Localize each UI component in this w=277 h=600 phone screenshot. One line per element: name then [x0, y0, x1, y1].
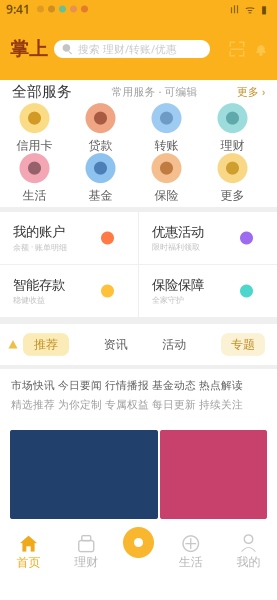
button[interactable]: 活动 — [162, 337, 186, 352]
button[interactable]: 基金 — [67, 153, 133, 203]
staticText: 理财 — [220, 138, 244, 153]
staticText: 搜索 理财/转账/优惠 — [78, 42, 177, 56]
button[interactable]: 贷款 — [67, 103, 133, 153]
staticText: 信用卡 — [16, 138, 52, 153]
staticText: 首页 — [16, 555, 40, 570]
staticText: 智能存款 — [13, 277, 65, 293]
button[interactable]: 更多 — [199, 153, 265, 203]
staticText: 掌上 — [10, 37, 48, 60]
button[interactable]: 信用卡 — [1, 103, 67, 153]
staticText: 全部服务 — [12, 82, 72, 100]
staticText: 稳健收益 — [13, 295, 45, 305]
staticText: 我的 — [236, 555, 260, 569]
staticText: 保险保障 — [152, 277, 204, 293]
button[interactable]: 优惠活动 — [139, 212, 277, 264]
button[interactable]: 智能存款 — [0, 265, 138, 317]
button[interactable]: 扫一扫 — [225, 39, 249, 59]
button[interactable]: 消息 — [249, 39, 273, 59]
button[interactable]: 理财 — [59, 534, 114, 570]
staticText: 生活 — [22, 188, 46, 203]
button[interactable]: 理财 — [199, 103, 265, 153]
staticText: 专题 — [231, 337, 255, 352]
staticText: 推荐 — [34, 337, 58, 352]
staticText: 更多 › — [237, 84, 265, 99]
button[interactable]: 生活 — [1, 153, 67, 203]
staticText: 生活 — [179, 555, 203, 569]
staticText: 常用服务 · 可编辑 — [111, 84, 197, 99]
staticText: 余额 · 账单明细 — [13, 242, 67, 252]
staticText: ıll ᯤ ▮ — [230, 2, 267, 16]
staticText: 限时福利领取 — [152, 242, 200, 252]
staticText: 更多 — [220, 188, 244, 203]
button[interactable]: 保险 — [133, 153, 199, 203]
staticText: 9:41 — [6, 1, 30, 17]
staticText: 我的账户 — [13, 223, 65, 240]
button[interactable]: 推荐 — [23, 333, 69, 356]
staticText: 转账 — [154, 138, 178, 153]
button[interactable]: 我的账户 — [0, 212, 138, 264]
staticText: 优惠活动 — [152, 224, 204, 240]
staticText: 基金 — [88, 188, 112, 203]
button[interactable]: 转账 — [133, 103, 199, 153]
button[interactable]: 首页 — [1, 534, 56, 570]
button[interactable]: 我的 — [221, 534, 276, 570]
staticText: 贷款 — [88, 138, 112, 153]
button[interactable]: 专题 — [221, 333, 265, 356]
button[interactable]: 更多 › — [237, 84, 265, 99]
staticText: 活动 — [162, 337, 186, 352]
staticText: 理财 — [74, 555, 98, 569]
staticText: 精选推荐 为你定制 专属权益 每日更新 持续关注 — [11, 398, 243, 411]
button[interactable]: 保险保障 — [139, 265, 277, 317]
button[interactable]: 付款码 — [123, 527, 154, 558]
staticText: 保险 — [154, 188, 178, 203]
staticText: 市场快讯 今日要闻 行情播报 基金动态 热点解读 — [11, 379, 243, 392]
button[interactable]: 资讯 — [104, 337, 128, 352]
button[interactable]: 生活 — [163, 534, 218, 570]
staticText: 资讯 — [104, 337, 128, 352]
staticText: 全家守护 — [152, 295, 184, 305]
